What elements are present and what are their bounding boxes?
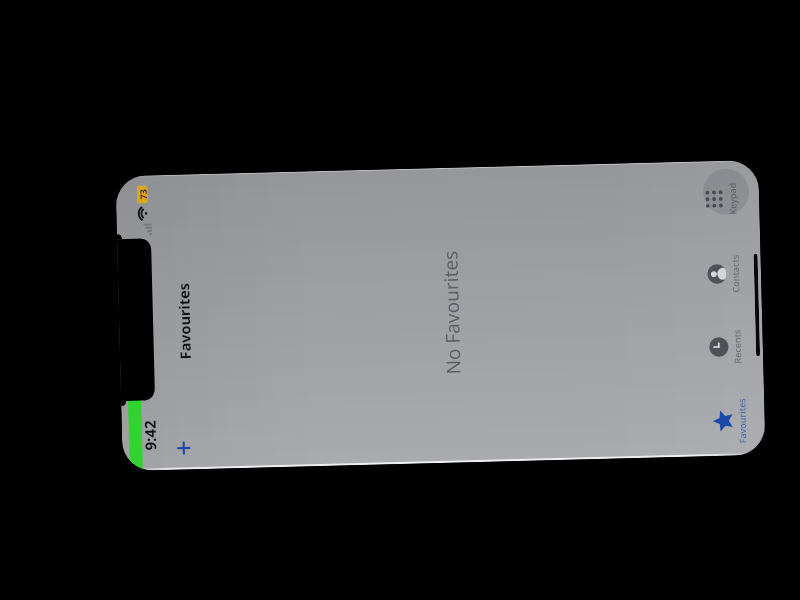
button[interactable]: Keypad <box>702 161 737 236</box>
staticText: Keypad <box>726 182 738 215</box>
button[interactable]: Add favourite <box>169 434 198 463</box>
staticText: Favourites <box>173 282 195 360</box>
button[interactable]: Favourites <box>712 383 747 456</box>
staticText: Recents <box>730 329 743 364</box>
staticText: Contacts <box>729 254 742 293</box>
button[interactable]: Contacts <box>705 236 740 311</box>
staticText: Favourites <box>735 397 748 444</box>
button[interactable]: Recents <box>707 309 742 384</box>
staticText: No Favourites <box>437 250 466 375</box>
staticText: 9:42 <box>140 420 160 451</box>
staticText: 73 <box>137 188 148 200</box>
